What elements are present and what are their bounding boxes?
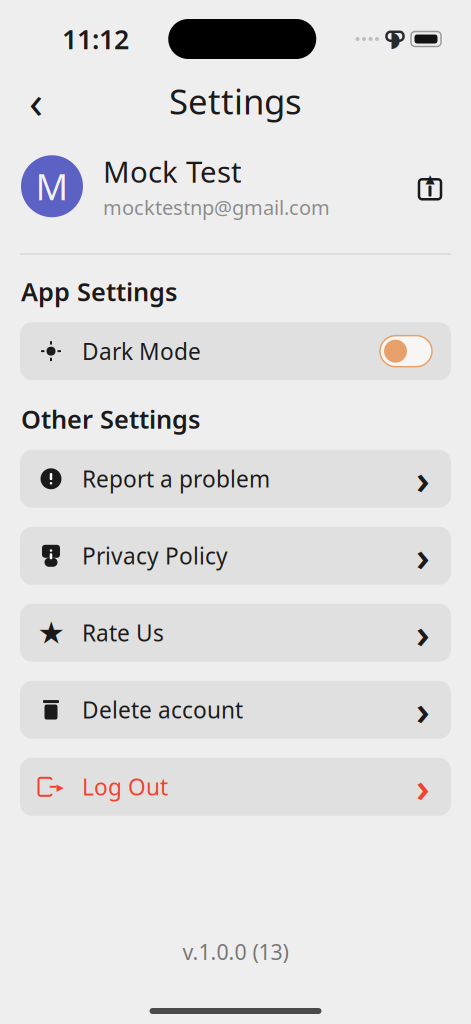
staticText: ▲	[425, 172, 434, 185]
staticText: ›	[416, 452, 430, 505]
staticText: ›	[416, 606, 430, 659]
staticText: Dark Mode	[82, 336, 201, 366]
button[interactable]: Dark Mode	[20, 322, 451, 380]
staticText: Rate Us	[82, 618, 164, 648]
button[interactable]: Delete account	[20, 681, 451, 739]
staticText: ›	[416, 529, 430, 582]
staticText: ★	[37, 615, 64, 650]
staticText: Report a problem	[82, 464, 270, 494]
button[interactable]: ★	[20, 604, 451, 662]
staticText: mocktestnp@gmail.com	[103, 194, 330, 221]
staticText: M	[35, 162, 68, 210]
staticText: v.1.0.0 (13)	[182, 938, 288, 966]
button[interactable]: Report a problem	[20, 450, 451, 508]
button[interactable]: ▸	[20, 758, 451, 816]
staticText: 11:12	[62, 21, 129, 57]
staticText: ▸	[56, 778, 63, 795]
staticText: Settings	[169, 78, 302, 124]
staticText: Other Settings	[21, 402, 200, 436]
button[interactable]: Share profile	[410, 166, 450, 206]
staticText: App Settings	[21, 274, 177, 308]
staticText: ‹	[29, 71, 43, 131]
button[interactable]: Back	[14, 79, 58, 123]
staticText: Delete account	[82, 695, 243, 725]
staticText: Mock Test	[103, 152, 242, 191]
button[interactable]: Privacy Policy	[20, 527, 451, 585]
staticText: Privacy Policy	[82, 541, 228, 571]
staticText: ›	[416, 683, 430, 736]
staticText: Log Out	[82, 772, 168, 802]
staticText: ◗	[389, 27, 400, 51]
staticText: ›	[416, 760, 430, 813]
